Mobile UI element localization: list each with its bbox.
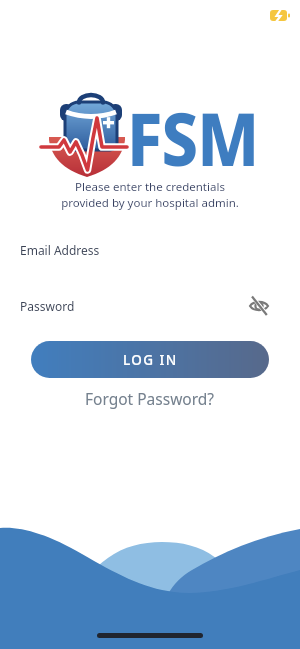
button[interactable]: Forgot Password? — [85, 388, 215, 409]
button[interactable]: Email Address — [0, 236, 300, 270]
staticText: LOG IN — [123, 351, 178, 369]
staticText: Password — [20, 298, 75, 314]
staticText: Email Address — [20, 242, 100, 258]
staticText: FSM — [127, 88, 259, 187]
staticText: Please enter the credentials provided by… — [0, 179, 300, 211]
button[interactable] — [248, 295, 270, 317]
button[interactable]: LOG IN — [31, 341, 269, 378]
button[interactable]: Password — [0, 292, 300, 326]
